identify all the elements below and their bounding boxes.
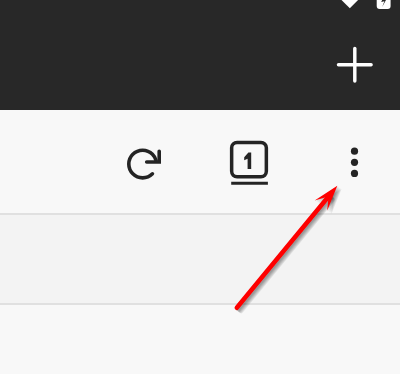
button[interactable]	[0, 215, 400, 303]
button[interactable]: 1 open tab, switch tabs	[225, 137, 273, 185]
button[interactable]: New tab	[331, 41, 379, 89]
button[interactable]: Reload	[117, 139, 165, 187]
button[interactable]: More options	[331, 138, 379, 186]
button[interactable]	[0, 305, 400, 374]
